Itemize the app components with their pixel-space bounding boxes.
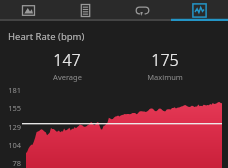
staticText: 129 [0,122,21,132]
button[interactable]: Laps [114,0,171,21]
button[interactable]: Charts [171,0,228,21]
staticText: 175 [151,49,179,71]
staticText: 147 [53,49,81,71]
staticText: 181 [0,85,21,95]
staticText: Maximum [147,72,183,82]
staticText: 78 [0,158,21,168]
button[interactable]: Map [0,0,57,21]
staticText: 155 [0,103,21,113]
button[interactable]: Details [57,0,114,21]
staticText: Average [53,72,82,82]
staticText: 104 [0,140,21,150]
staticText: Heart Rate (bpm) [8,30,85,43]
